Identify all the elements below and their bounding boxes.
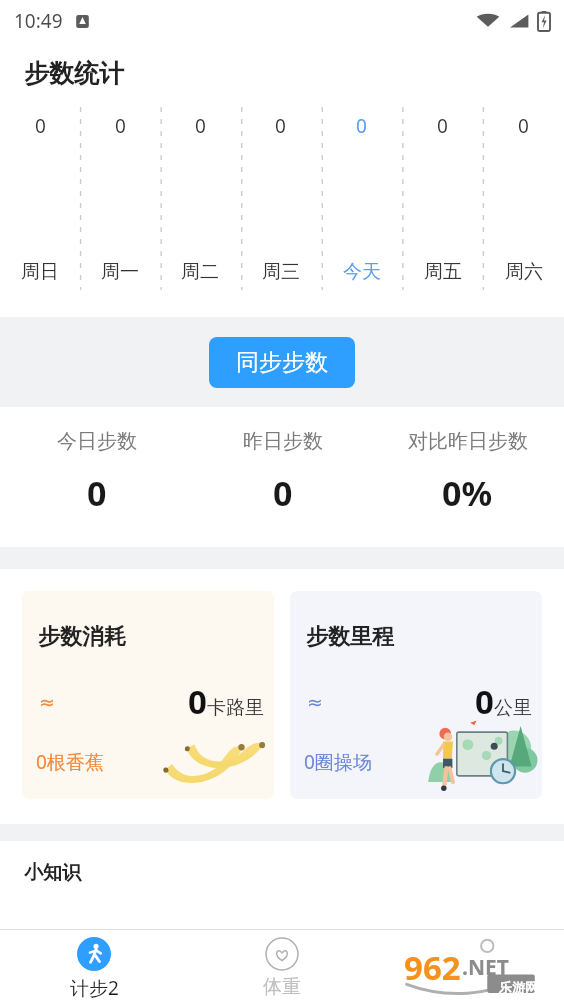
staticText: 0 [195,113,206,139]
staticText: 0 [275,113,286,139]
other: 体重 [265,937,299,971]
button[interactable]: 对比昨日步数 [375,407,560,529]
staticText: 0 [273,470,293,516]
button[interactable]: 昨日步数 [190,407,375,529]
staticText: 962 [404,945,461,990]
staticText: 0 [356,113,367,139]
staticText: 卡路里 [207,696,264,720]
staticText: 公里 [494,696,532,720]
staticText: 计步2 [70,975,119,1001]
staticText: 周日 [21,260,59,284]
button[interactable]: 0 [0,104,80,294]
staticText: 0根香蕉 [36,749,104,775]
staticText: 小知识 [24,861,81,885]
staticText: 今日步数 [57,429,137,454]
button[interactable]: 步数里程 [290,591,542,799]
staticText: 昨日步数 [243,429,323,454]
button[interactable]: 0 [483,104,564,294]
button[interactable]: 0 [80,104,160,294]
staticText: 步数统计 [24,58,124,89]
button[interactable]: 0 [160,104,240,294]
button[interactable]: 计步2 [0,930,188,1004]
staticText: 0 [115,113,126,139]
staticText: ≈ [307,691,323,713]
button[interactable]: 0 [240,104,321,294]
staticText: 0 [437,113,448,139]
button[interactable]: 今日步数 [4,407,190,529]
staticText: 步数消耗 [38,623,126,651]
staticText: 周三 [262,260,300,284]
staticText: 周二 [181,260,219,284]
staticText: ≈ [39,691,55,713]
staticText: 对比昨日步数 [408,429,528,454]
staticText: 周一 [101,260,139,284]
staticText: 周六 [505,260,543,284]
staticText: 乐游网 [499,979,538,995]
staticText: 10:49 [14,8,63,34]
staticText: 0圈操场 [304,749,372,775]
button[interactable]: 同步步数 [209,337,355,388]
staticText: 同步步数 [236,348,328,377]
button[interactable]: 步数消耗 [22,591,274,799]
staticText: 0 [188,679,207,724]
staticText: 0 [518,113,529,139]
staticText: 0 [475,679,494,724]
staticText: .NET [462,953,509,982]
button[interactable]: 0 [402,104,483,294]
staticText: 步数里程 [306,623,394,651]
staticText: 0% [442,470,493,516]
staticText: 体重 [263,975,301,999]
button[interactable]: 体重 [188,930,376,1004]
staticText: 0 [35,113,46,139]
staticText: 今天 [343,260,381,284]
staticText: 周五 [424,260,462,284]
button[interactable]: 0 [321,104,402,294]
staticText: 0 [87,470,107,516]
